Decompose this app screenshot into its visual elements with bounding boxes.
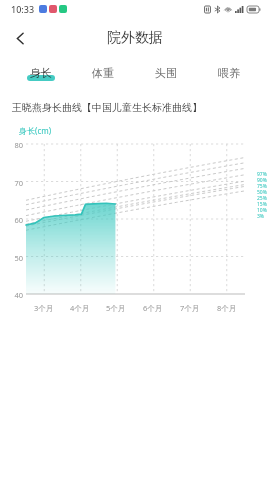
button[interactable]: 头围 (134, 58, 197, 88)
button[interactable]: Back (3, 21, 37, 55)
staticText: 5个月 (106, 303, 126, 313)
staticText: 10% (257, 207, 267, 213)
staticText: 50 (5, 253, 23, 263)
staticText: 8个月 (217, 303, 237, 313)
staticText: 75% (257, 183, 267, 189)
staticText: 4个月 (70, 303, 90, 313)
staticText: 喂养 (218, 66, 240, 80)
staticText: 身长(cm) (19, 125, 52, 136)
staticText: 6个月 (143, 303, 163, 313)
button[interactable]: 身长 (10, 58, 72, 88)
button[interactable]: 喂养 (197, 58, 260, 88)
staticText: 80 (5, 140, 23, 150)
staticText: 50% (257, 189, 267, 195)
staticText: 3% (257, 213, 265, 219)
staticText: 97% (257, 171, 267, 177)
staticText: 王晓燕身长曲线【中国儿童生长标准曲线】 (12, 101, 202, 114)
button[interactable]: 体重 (72, 58, 134, 88)
staticText: 15% (257, 201, 267, 207)
staticText: 身长 (30, 66, 52, 80)
staticText: 40 (5, 290, 23, 300)
staticText: 60 (5, 215, 23, 225)
staticText: 70 (5, 178, 23, 188)
staticText: 体重 (92, 66, 114, 80)
staticText: 10:33 (11, 3, 35, 15)
staticText: 院外数据 (107, 29, 163, 47)
staticText: 7个月 (180, 303, 200, 313)
staticText: 90% (257, 177, 267, 183)
staticText: 25% (257, 195, 267, 201)
staticText: 3个月 (34, 303, 54, 313)
staticText: 头围 (155, 66, 177, 80)
